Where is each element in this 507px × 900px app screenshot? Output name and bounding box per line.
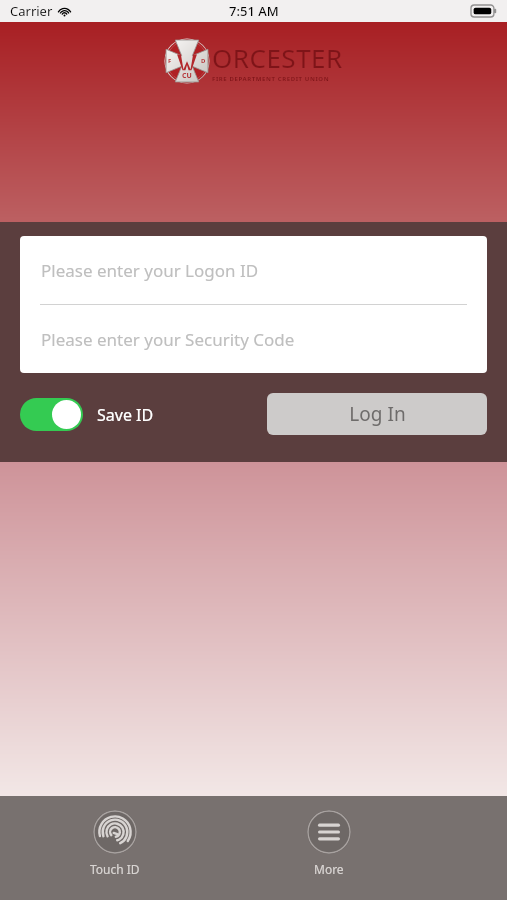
staticText: F [168,57,172,65]
staticText: Carrier [10,2,53,20]
staticText: ORCESTER [212,40,343,75]
staticText: D [201,57,206,65]
staticText: 7:51 AM [229,2,279,20]
button[interactable]: Log In [267,393,487,435]
staticText: FIRE DEPARTMENT CREDIT UNION [212,75,330,83]
staticText: Touch ID [90,861,140,877]
button[interactable]: Please enter your Security Code [20,305,487,373]
staticText: Log In [349,401,406,427]
button[interactable]: More [303,808,355,879]
button[interactable]: Please enter your Logon ID [20,236,487,304]
other: Save ID toggle, on [20,398,83,431]
staticText: Please enter your Security Code [41,328,295,351]
button[interactable]: Touch ID [86,808,144,879]
staticText: Save ID [97,404,154,426]
button[interactable]: Save ID toggle, on [20,398,154,431]
staticText: More [314,861,344,877]
staticText: CU [182,71,192,81]
staticText: Please enter your Logon ID [41,259,259,282]
